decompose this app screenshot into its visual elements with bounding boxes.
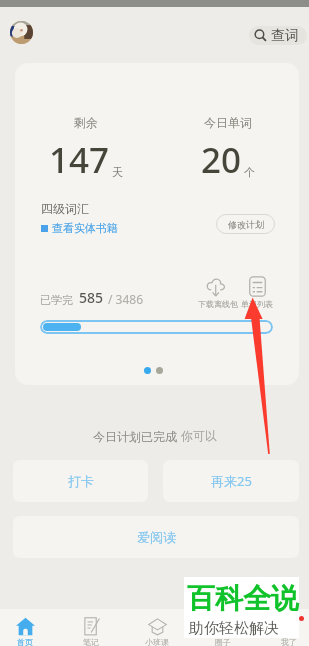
staticText: 20 xyxy=(201,136,242,184)
button[interactable]: 查词 xyxy=(249,26,307,45)
staticText: 天 xyxy=(112,165,123,179)
button[interactable]: 下载离线包 xyxy=(198,276,238,309)
staticText: 今日计划已完成 xyxy=(93,428,181,444)
staticText: 打卡 xyxy=(68,473,94,489)
button[interactable]: 爱阅读 xyxy=(13,516,299,558)
button[interactable]: Profile xyxy=(10,21,33,44)
staticText: 再来25 xyxy=(211,472,252,490)
button[interactable]: 我了 xyxy=(267,609,309,646)
staticText: / 3486 xyxy=(108,291,144,307)
staticText: 已学完 xyxy=(40,293,73,307)
staticText: 百科全说 xyxy=(187,581,299,616)
staticText: 圈子 xyxy=(215,637,231,646)
staticText: 爱阅读 xyxy=(137,529,176,545)
staticText: 笔记 xyxy=(83,637,99,646)
staticText: 你可以 xyxy=(181,428,217,443)
staticText: 个 xyxy=(244,165,255,179)
staticText: 今日单词 xyxy=(204,115,252,130)
button[interactable]: 首页 xyxy=(3,609,47,646)
button[interactable]: 单词列表 xyxy=(241,276,273,309)
button[interactable]: 小班课 xyxy=(135,609,179,646)
button[interactable]: 修改计划 xyxy=(216,214,275,234)
staticText: 147 xyxy=(49,136,110,184)
staticText: 单词列表 xyxy=(241,299,273,309)
button[interactable]: 再来25 xyxy=(163,460,299,502)
staticText: 修改计划 xyxy=(228,219,264,230)
staticText: 查词 xyxy=(271,27,299,45)
staticText: 下载离线包 xyxy=(198,299,238,309)
staticText: 剩余 xyxy=(74,115,98,130)
staticText: 我了 xyxy=(281,637,297,646)
button[interactable]: 笔记 xyxy=(69,609,113,646)
staticText: 首页 xyxy=(17,637,33,646)
staticText: 四级词汇 xyxy=(41,201,89,216)
button[interactable]: 查看实体书籍 xyxy=(41,221,118,235)
staticText: 查看实体书籍 xyxy=(52,221,118,235)
button[interactable]: 圈子 xyxy=(201,609,245,646)
staticText: 585 xyxy=(79,288,104,307)
staticText: 助你轻松解决 xyxy=(189,619,279,638)
staticText: 小班课 xyxy=(145,637,169,646)
button[interactable]: 打卡 xyxy=(13,460,148,502)
